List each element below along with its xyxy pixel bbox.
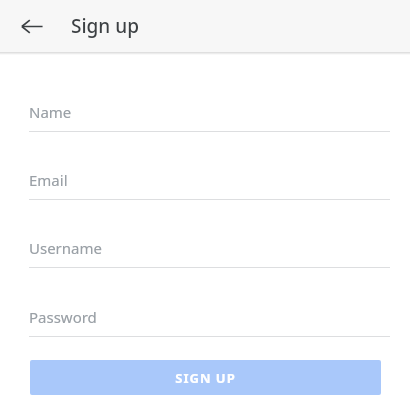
staticText: Name <box>29 102 72 122</box>
button[interactable]: SIGN UP <box>30 360 381 395</box>
button[interactable]: Password <box>29 306 390 337</box>
button[interactable]: Back <box>14 8 50 44</box>
staticText: Email <box>29 170 68 190</box>
button[interactable]: Username <box>29 237 390 268</box>
staticText: Username <box>29 238 102 258</box>
staticText: Password <box>29 307 97 327</box>
button[interactable]: Name <box>29 101 390 132</box>
staticText: Sign up <box>71 13 139 39</box>
button[interactable]: Email <box>29 169 390 200</box>
staticText: SIGN UP <box>175 369 236 387</box>
